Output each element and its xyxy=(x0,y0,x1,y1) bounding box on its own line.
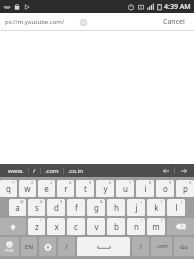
button[interactable]: Next xyxy=(178,165,189,176)
button[interactable]: q xyxy=(0,180,17,197)
staticText: d xyxy=(54,202,59,213)
staticText: 5 xyxy=(89,180,92,185)
staticText: x xyxy=(54,221,59,232)
button[interactable]: x xyxy=(47,218,65,235)
staticText: 6 xyxy=(109,180,112,185)
staticText: o xyxy=(163,183,168,194)
staticText: p xyxy=(183,183,188,194)
staticText: n xyxy=(134,221,139,232)
staticText: + xyxy=(140,199,143,204)
staticText: z xyxy=(35,221,39,232)
button[interactable]: Symbols xyxy=(0,237,19,256)
staticText: q xyxy=(6,183,11,194)
button[interactable]: f xyxy=(67,199,85,216)
staticText: Cancel xyxy=(163,17,185,27)
staticText: ) xyxy=(181,199,183,204)
staticText: h xyxy=(114,202,119,213)
button[interactable]: j xyxy=(127,199,145,216)
staticText: y xyxy=(103,183,108,194)
staticText: " xyxy=(61,218,63,223)
staticText: w xyxy=(24,183,31,194)
button[interactable]: www. xyxy=(4,165,28,177)
staticText: v xyxy=(94,221,99,232)
button[interactable]: Settings xyxy=(39,237,56,256)
staticText: 9 xyxy=(169,180,172,185)
staticText: e xyxy=(44,183,49,194)
staticText: 8 xyxy=(149,180,152,185)
staticText: & xyxy=(100,199,103,204)
staticText: g xyxy=(94,202,99,213)
staticText: 7 xyxy=(129,180,132,185)
staticText: ; xyxy=(121,218,123,223)
staticText: t xyxy=(84,183,87,194)
button[interactable]: l xyxy=(167,199,185,216)
button[interactable]: w xyxy=(19,180,36,197)
button[interactable]: .co.in xyxy=(64,165,87,177)
button[interactable]: Previous xyxy=(160,165,171,176)
button[interactable]: Shift xyxy=(0,218,26,235)
staticText: 1 xyxy=(12,180,15,185)
staticText: .com xyxy=(156,243,168,250)
button[interactable]: / xyxy=(58,237,75,256)
staticText: a xyxy=(15,202,20,213)
staticText: / xyxy=(33,167,36,175)
staticText: ' xyxy=(82,218,83,223)
staticText: u xyxy=(123,183,128,194)
staticText: @ xyxy=(20,199,24,204)
staticText: 3 xyxy=(50,180,53,185)
staticText: m xyxy=(152,221,160,232)
staticText: ! xyxy=(141,218,143,223)
button[interactable]: b xyxy=(107,218,125,235)
button[interactable]: z xyxy=(28,218,45,235)
staticText: - xyxy=(121,199,123,204)
button[interactable]: r xyxy=(57,180,74,197)
button[interactable]: y xyxy=(96,180,114,197)
button[interactable]: t xyxy=(76,180,94,197)
button[interactable]: s xyxy=(28,199,45,216)
button[interactable]: ! xyxy=(132,237,149,256)
staticText: _ xyxy=(81,199,83,204)
button[interactable]: n xyxy=(127,218,145,235)
button[interactable]: Space xyxy=(77,237,130,256)
staticText: www. xyxy=(8,167,24,175)
staticText: ?123 xyxy=(5,248,14,253)
button[interactable]: e xyxy=(38,180,55,197)
button[interactable]: o xyxy=(156,180,174,197)
staticText: # xyxy=(40,199,43,204)
staticText: 2 xyxy=(31,180,34,185)
staticText: / xyxy=(65,242,68,252)
button[interactable]: Backspace xyxy=(167,218,194,235)
button[interactable]: a xyxy=(9,199,26,216)
button[interactable]: v xyxy=(87,218,105,235)
button[interactable]: m xyxy=(147,218,165,235)
button[interactable]: / xyxy=(29,165,40,177)
button[interactable]: EN xyxy=(21,237,37,256)
button[interactable]: d xyxy=(47,199,65,216)
staticText: i xyxy=(144,183,147,194)
staticText: $ xyxy=(60,199,63,204)
button[interactable]: i xyxy=(136,180,154,197)
staticText: k xyxy=(154,202,159,213)
button[interactable]: Clear xyxy=(79,18,88,27)
staticText: s xyxy=(35,202,39,213)
staticText: .com xyxy=(45,167,59,175)
button[interactable]: .com xyxy=(151,237,172,256)
button[interactable]: Go xyxy=(174,237,194,256)
staticText: f xyxy=(75,202,78,213)
button[interactable]: u xyxy=(116,180,134,197)
button[interactable]: c xyxy=(67,218,85,235)
staticText: b xyxy=(114,221,119,232)
button[interactable]: .com xyxy=(41,165,63,177)
staticText: l xyxy=(175,202,178,213)
button[interactable]: Cancel xyxy=(159,15,189,29)
button[interactable]: h xyxy=(107,199,125,216)
staticText: ( xyxy=(161,199,163,204)
staticText: ps://m.youtube.com/watch?v=QRayG2v-4p8 xyxy=(5,18,75,26)
staticText: j xyxy=(135,202,138,213)
staticText: : xyxy=(101,218,103,223)
button[interactable]: k xyxy=(147,199,165,216)
button[interactable]: p xyxy=(176,180,194,197)
staticText: 4 xyxy=(69,180,72,185)
button[interactable]: g xyxy=(87,199,105,216)
staticText: r xyxy=(64,183,68,194)
